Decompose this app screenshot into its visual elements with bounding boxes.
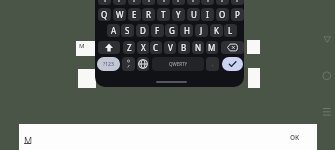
button[interactable]: K — [210, 24, 223, 37]
button[interactable]: U — [187, 8, 200, 21]
button[interactable]: B — [178, 41, 190, 54]
staticText: M — [208, 42, 216, 53]
button[interactable] — [137, 57, 149, 71]
staticText: C — [153, 42, 159, 53]
button[interactable]: Y — [172, 8, 185, 21]
button[interactable] — [157, 0, 170, 5]
staticText: Y — [176, 9, 181, 20]
button[interactable] — [172, 0, 185, 5]
staticText: . — [212, 60, 214, 68]
button[interactable] — [221, 41, 244, 54]
staticText: V — [168, 42, 173, 53]
staticText: U — [191, 9, 197, 20]
staticText: N — [195, 42, 202, 53]
button[interactable]: R — [142, 8, 155, 21]
button[interactable]: S — [121, 24, 134, 37]
button[interactable]: O — [216, 8, 229, 21]
button[interactable]: W — [113, 8, 126, 21]
staticText: K — [214, 25, 219, 36]
button[interactable] — [231, 0, 244, 5]
staticText: L — [228, 25, 233, 36]
button[interactable]: J — [195, 24, 208, 37]
staticText: O — [219, 9, 226, 20]
staticText: X — [141, 42, 146, 53]
button[interactable]: Z — [123, 41, 135, 54]
button[interactable]: I — [201, 8, 214, 21]
button[interactable] — [98, 41, 120, 54]
staticText: QWERTY — [169, 61, 188, 67]
button[interactable]: N — [192, 41, 204, 54]
staticText: OK — [290, 133, 300, 142]
staticText: R — [146, 9, 151, 20]
staticText: S — [125, 25, 130, 36]
staticText: I — [206, 9, 209, 20]
button[interactable]: QWERTY — [152, 57, 204, 71]
button[interactable]: L — [224, 24, 237, 37]
button[interactable]: T — [157, 8, 170, 21]
staticText: E — [132, 9, 137, 20]
button[interactable] — [19, 124, 317, 150]
staticText: A — [111, 25, 117, 36]
staticText: J — [200, 25, 203, 36]
button[interactable] — [98, 0, 111, 5]
button[interactable] — [187, 0, 200, 5]
button[interactable] — [142, 0, 155, 5]
button[interactable] — [216, 0, 229, 5]
button[interactable]: . — [206, 57, 219, 71]
staticText: W — [116, 9, 124, 20]
staticText: P — [235, 9, 240, 20]
staticText: ?123 — [103, 61, 114, 68]
button[interactable]: M — [206, 41, 218, 54]
button[interactable]: X — [137, 41, 149, 54]
button[interactable]: OK — [290, 133, 300, 142]
staticText: Z — [127, 42, 132, 53]
button[interactable] — [222, 57, 243, 71]
staticText: Q — [101, 9, 108, 20]
staticText: D — [140, 25, 146, 36]
staticText: T — [161, 9, 166, 20]
button[interactable]: G — [165, 24, 178, 37]
button[interactable]: F — [151, 24, 164, 37]
button[interactable]: Q — [98, 8, 111, 21]
button[interactable] — [201, 0, 214, 5]
staticText: G — [169, 25, 175, 36]
button[interactable]: V — [164, 41, 176, 54]
staticText: F — [155, 25, 160, 36]
button[interactable]: D — [136, 24, 149, 37]
button[interactable] — [122, 57, 135, 71]
staticText: M — [79, 42, 85, 50]
button[interactable]: E — [128, 8, 141, 21]
staticText: H — [184, 25, 190, 36]
button[interactable]: P — [231, 8, 244, 21]
button[interactable]: H — [180, 24, 193, 37]
button[interactable]: C — [150, 41, 162, 54]
staticText: B — [181, 42, 187, 53]
button[interactable]: A — [107, 24, 120, 37]
button[interactable] — [113, 0, 126, 5]
button[interactable]: ?123 — [97, 57, 120, 71]
button[interactable] — [128, 0, 141, 5]
staticText: M — [24, 134, 33, 146]
